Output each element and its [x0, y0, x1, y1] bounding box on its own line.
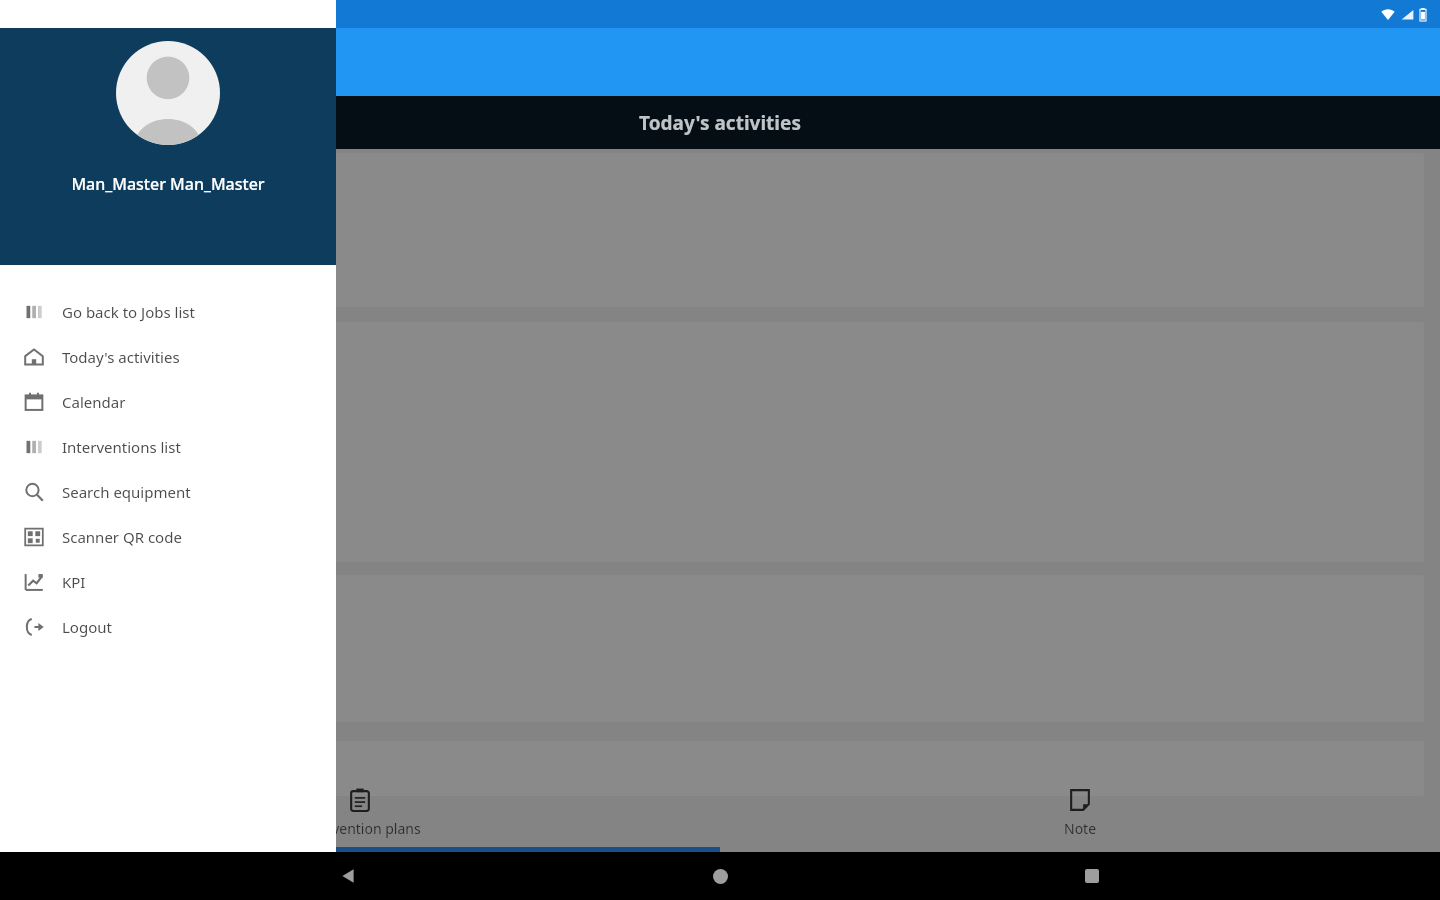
- button[interactable]: Go back to Jobs list: [0, 289, 336, 334]
- button[interactable]: KPI: [0, 559, 336, 604]
- button[interactable]: Search equipment: [0, 469, 336, 514]
- button[interactable]: [0, 575, 1424, 722]
- staticText: Today's activities: [62, 347, 180, 367]
- button[interactable]: Calendar: [0, 379, 336, 424]
- button[interactable]: Back: [324, 852, 372, 900]
- staticText: Note: [1064, 819, 1097, 838]
- staticText: Intervention plans: [300, 819, 421, 838]
- button[interactable]: Scanner QR code: [0, 514, 336, 559]
- button[interactable]: Intervention plans: [0, 777, 720, 847]
- button[interactable]: [0, 153, 1424, 307]
- button[interactable]: Man_Master Man_Master: [0, 28, 336, 265]
- button[interactable]: Home: [696, 852, 744, 900]
- staticText: Man_Master Man_Master: [71, 173, 265, 195]
- staticText: Go back to Jobs list: [62, 302, 195, 322]
- button[interactable]: Interventions list: [0, 424, 336, 469]
- button[interactable]: Note: [720, 777, 1440, 847]
- staticText: Scanner QR code: [62, 527, 182, 547]
- staticText: KPI: [62, 572, 86, 592]
- staticText: Logout: [62, 617, 112, 637]
- staticText: Calendar: [62, 392, 126, 412]
- staticText: Today's activities: [639, 110, 801, 136]
- button[interactable]: Logout: [0, 604, 336, 649]
- button[interactable]: Today's activities: [0, 334, 336, 379]
- button[interactable]: [0, 741, 1424, 796]
- staticText: Search equipment: [62, 482, 191, 502]
- button[interactable]: Recent apps: [1068, 852, 1116, 900]
- staticText: Interventions list: [62, 437, 181, 457]
- button[interactable]: [0, 322, 1424, 562]
